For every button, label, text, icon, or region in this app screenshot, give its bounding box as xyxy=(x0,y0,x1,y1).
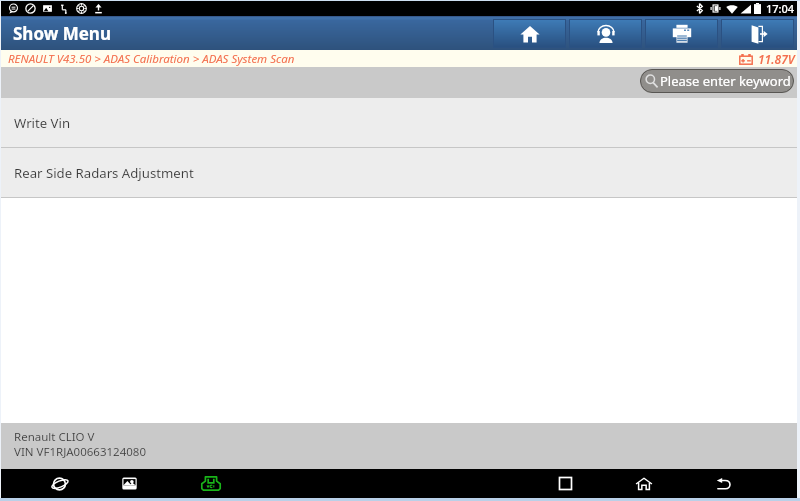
button[interactable]: Home xyxy=(494,20,565,47)
button[interactable]: Please enter keyword xyxy=(640,69,794,93)
staticText: Renault CLIO V xyxy=(14,429,95,445)
button[interactable]: Rear Side Radars Adjustment xyxy=(1,148,797,197)
button[interactable]: Write Vin xyxy=(1,98,797,147)
button[interactable]: Print xyxy=(646,20,717,47)
button[interactable]: Gallery xyxy=(109,469,149,498)
button[interactable]: Browser xyxy=(40,469,80,498)
button[interactable]: Back xyxy=(704,469,744,498)
button[interactable]: Home xyxy=(624,469,664,498)
staticText: Show Menu xyxy=(13,22,111,45)
button[interactable]: Recents xyxy=(545,469,585,498)
staticText: VIN VF1RJA00663124080 xyxy=(14,444,146,460)
staticText: Write Vin xyxy=(14,114,71,132)
staticText: RENAULT V43.50 > ADAS Calibration > ADAS… xyxy=(8,51,295,67)
button[interactable]: VCI xyxy=(191,469,231,498)
staticText: Rear Side Radars Adjustment xyxy=(14,164,194,182)
button[interactable]: Support xyxy=(570,20,641,47)
staticText: Please enter keyword xyxy=(660,72,791,90)
staticText: 17:04 xyxy=(766,1,795,16)
staticText: 11.87V xyxy=(758,51,795,67)
button[interactable]: Exit xyxy=(722,20,793,47)
